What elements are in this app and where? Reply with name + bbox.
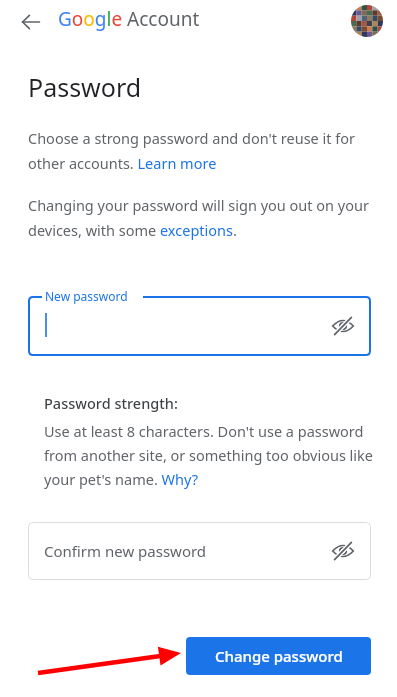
staticText: Google Account [58,6,200,32]
button[interactable]: Confirm new password [28,522,371,580]
button[interactable]: Show password [325,308,361,344]
staticText: Confirm new password [44,541,207,561]
button[interactable]: Back [14,5,48,39]
staticText: Choose a strong password and don't reuse… [28,128,369,173]
staticText: Change password [215,646,343,666]
button[interactable]: Account profile [351,5,383,37]
staticText: Password [28,70,142,104]
button[interactable]: New password [28,296,371,356]
button[interactable]: Show confirm password [325,533,361,569]
staticText: New password [45,288,128,304]
staticText: Password strength: [44,393,178,413]
button[interactable]: Change password [186,637,371,675]
staticText: Use at least 8 characters. Don't use a p… [44,421,374,489]
staticText: Changing your password will sign you out… [28,195,369,240]
